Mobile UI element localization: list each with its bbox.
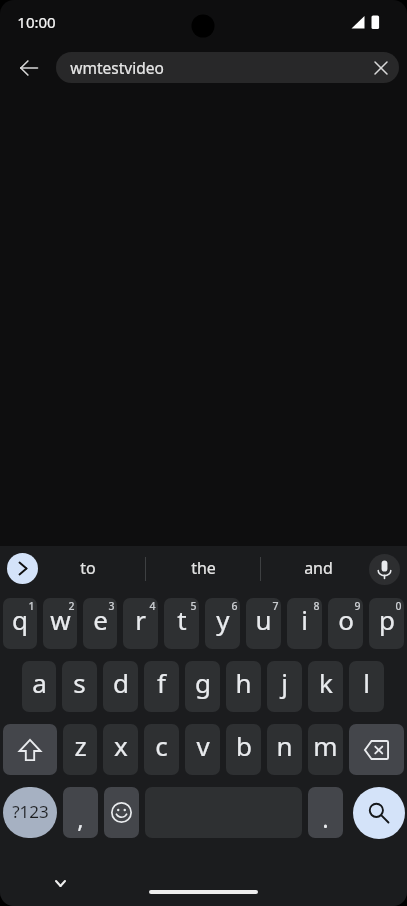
- staticText: r: [135, 602, 146, 637]
- button[interactable]: Clear: [368, 55, 394, 81]
- button[interactable]: Shift: [3, 724, 57, 775]
- staticText: q: [12, 602, 28, 637]
- staticText: j: [281, 665, 288, 700]
- staticText: z: [74, 728, 87, 763]
- button[interactable]: wmtestvideo: [56, 52, 399, 83]
- button[interactable]: v: [185, 724, 220, 775]
- button[interactable]: y: [205, 598, 240, 649]
- button[interactable]: k: [308, 661, 343, 712]
- button[interactable]: ,: [63, 787, 98, 838]
- button[interactable]: g: [185, 661, 220, 712]
- staticText: n: [276, 728, 293, 763]
- button[interactable]: More suggestions: [7, 553, 38, 584]
- button[interactable]: Backspace: [349, 724, 404, 775]
- staticText: u: [255, 602, 272, 637]
- button[interactable]: c: [144, 724, 179, 775]
- staticText: x: [114, 728, 128, 763]
- staticText: y: [216, 602, 230, 637]
- button[interactable]: ?123: [3, 787, 57, 838]
- staticText: 7: [272, 599, 279, 613]
- button[interactable]: i: [287, 598, 322, 649]
- staticText: 8: [313, 599, 320, 613]
- staticText: t: [177, 602, 187, 637]
- button[interactable]: Search: [353, 787, 405, 839]
- staticText: d: [113, 665, 129, 700]
- button[interactable]: b: [226, 724, 261, 775]
- button[interactable]: Hide keyboard: [42, 865, 78, 901]
- button[interactable]: a: [22, 661, 56, 712]
- button[interactable]: to: [30, 546, 145, 592]
- staticText: 10:00: [17, 12, 56, 32]
- button[interactable]: r: [123, 598, 158, 649]
- other: Backspace: [364, 740, 389, 760]
- staticText: f: [157, 665, 166, 700]
- staticText: i: [301, 602, 308, 637]
- staticText: to: [80, 557, 96, 579]
- staticText: and: [304, 557, 333, 579]
- staticText: e: [93, 602, 108, 637]
- staticText: the: [191, 557, 216, 579]
- staticText: g: [195, 665, 211, 700]
- staticText: v: [196, 728, 210, 763]
- staticText: 9: [354, 599, 361, 613]
- staticText: p: [379, 602, 395, 637]
- button[interactable]: w: [43, 598, 77, 649]
- staticText: 3: [108, 599, 115, 613]
- staticText: c: [155, 728, 168, 763]
- button[interactable]: s: [62, 661, 97, 712]
- button[interactable]: h: [226, 661, 261, 712]
- staticText: m: [313, 728, 338, 763]
- button[interactable]: p: [369, 598, 404, 649]
- button[interactable]: t: [164, 598, 199, 649]
- staticText: a: [32, 665, 47, 700]
- staticText: s: [73, 665, 86, 700]
- staticText: o: [338, 602, 354, 637]
- button[interactable]: o: [328, 598, 363, 649]
- button[interactable]: e: [83, 598, 117, 649]
- button[interactable]: f: [144, 661, 179, 712]
- button[interactable]: .: [308, 787, 343, 838]
- staticText: 6: [231, 599, 238, 613]
- button[interactable]: x: [103, 724, 138, 775]
- staticText: 4: [149, 599, 156, 613]
- button[interactable]: Voice input: [369, 554, 400, 585]
- button[interactable]: m: [308, 724, 343, 775]
- staticText: 0: [395, 599, 402, 613]
- button[interactable]: the: [146, 546, 260, 592]
- staticText: h: [235, 665, 252, 700]
- staticText: 1: [28, 599, 35, 613]
- staticText: 2: [68, 599, 75, 613]
- staticText: b: [236, 728, 252, 763]
- staticText: l: [363, 665, 370, 700]
- button[interactable]: l: [349, 661, 384, 712]
- staticText: 5: [190, 599, 197, 613]
- staticText: k: [319, 665, 333, 700]
- button[interactable]: j: [267, 661, 302, 712]
- staticText: .: [322, 802, 329, 835]
- staticText: wmtestvideo: [70, 57, 164, 78]
- button[interactable]: n: [267, 724, 302, 775]
- button[interactable]: Emoji: [104, 787, 139, 838]
- button[interactable]: d: [103, 661, 138, 712]
- other: Emoji: [111, 802, 132, 823]
- button[interactable]: z: [63, 724, 97, 775]
- staticText: ,: [77, 802, 84, 835]
- button[interactable]: and: [261, 546, 375, 592]
- other: Shift: [19, 739, 41, 761]
- staticText: ?123: [12, 800, 49, 823]
- button[interactable]: q: [3, 598, 37, 649]
- button[interactable]: u: [246, 598, 281, 649]
- button[interactable]: Back: [8, 47, 49, 88]
- staticText: w: [50, 602, 71, 637]
